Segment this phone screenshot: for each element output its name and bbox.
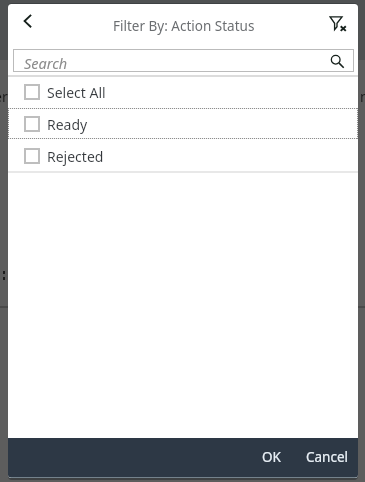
staticText: OK (262, 448, 281, 466)
button[interactable]: Ready (8, 107, 358, 139)
button[interactable]: Select All (8, 75, 358, 107)
staticText: Select All (47, 83, 106, 102)
button[interactable]: Rejected (8, 139, 358, 171)
staticText: number (360, 87, 365, 106)
staticText: Filter By: Action Status (113, 17, 255, 35)
staticText: Search (24, 53, 68, 73)
staticText: Rejected (47, 147, 104, 166)
button[interactable]: Back (16, 10, 46, 40)
staticText: Cancel (306, 448, 349, 466)
staticText: Ready (47, 115, 88, 134)
button[interactable]: Search (13, 49, 354, 72)
button[interactable]: OK (252, 438, 290, 475)
button[interactable]: Clear filter (322, 10, 352, 40)
button[interactable]: Cancel (297, 438, 357, 475)
staticText: Order (0, 87, 8, 106)
